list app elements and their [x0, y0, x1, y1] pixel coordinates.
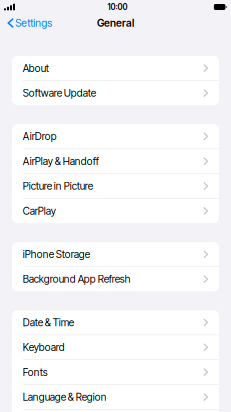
staticText: iPhone Storage — [23, 248, 90, 260]
staticText: About — [23, 62, 49, 74]
staticText: Language & Region — [23, 391, 107, 403]
button[interactable]: Picture in Picture — [12, 174, 219, 198]
staticText: CarPlay — [23, 205, 56, 217]
button[interactable]: About — [12, 56, 219, 80]
staticText: Settings — [15, 17, 52, 29]
staticText: Software Update — [23, 87, 96, 99]
button[interactable]: Language & Region — [12, 385, 219, 409]
staticText: Keyboard — [23, 341, 65, 353]
staticText: 10:00 — [107, 2, 127, 12]
button[interactable]: Software Update — [12, 81, 219, 105]
button[interactable]: AirPlay & Handoff — [12, 149, 219, 173]
button[interactable]: Background App Refresh — [12, 267, 219, 291]
staticText: General — [97, 17, 134, 29]
button[interactable]: Keyboard — [12, 335, 219, 360]
button[interactable]: AirDrop — [12, 124, 219, 149]
staticText: Background App Refresh — [23, 273, 131, 285]
staticText: AirPlay & Handoff — [23, 155, 99, 167]
button[interactable]: Settings — [0, 13, 56, 33]
staticText: Date & Time — [23, 316, 74, 329]
button[interactable]: iPhone Storage — [12, 242, 219, 266]
button[interactable]: CarPlay — [12, 199, 219, 223]
staticText: AirDrop — [23, 130, 57, 143]
button[interactable]: Fonts — [12, 360, 219, 384]
staticText: Picture in Picture — [23, 180, 93, 192]
button[interactable]: Date & Time — [12, 310, 219, 335]
staticText: Fonts — [23, 366, 48, 378]
